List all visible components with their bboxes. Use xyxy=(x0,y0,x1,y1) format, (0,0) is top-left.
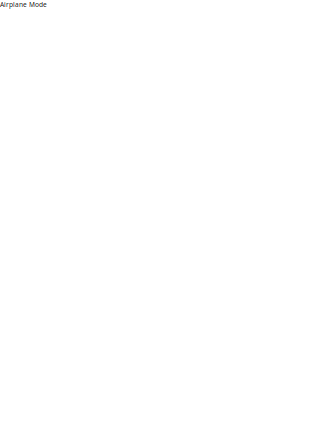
staticText: Airplane Mode xyxy=(0,0,47,9)
